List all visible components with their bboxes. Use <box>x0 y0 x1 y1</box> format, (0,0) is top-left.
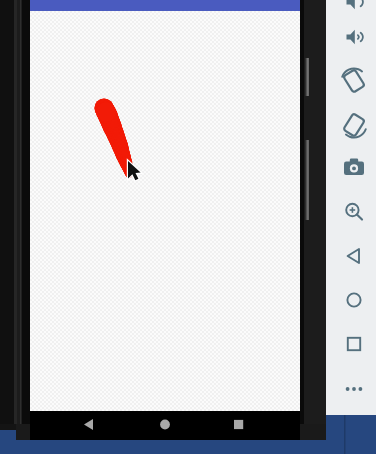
button[interactable]: Back <box>334 238 370 274</box>
button[interactable]: Back <box>74 411 104 437</box>
button[interactable]: Volume down <box>334 19 370 55</box>
button[interactable]: Volume up <box>334 0 370 28</box>
button[interactable]: Overview <box>334 326 370 362</box>
button[interactable]: Rotate left <box>334 63 370 99</box>
button[interactable]: More options <box>334 372 370 408</box>
button[interactable]: Drawing canvas <box>30 11 300 415</box>
button[interactable]: Home <box>150 411 180 437</box>
button[interactable]: Zoom <box>334 194 370 230</box>
button[interactable]: Take screenshot <box>334 150 370 186</box>
button[interactable]: Overview <box>224 411 254 437</box>
button[interactable]: Home <box>334 282 370 318</box>
button[interactable]: Rotate right <box>334 107 370 143</box>
